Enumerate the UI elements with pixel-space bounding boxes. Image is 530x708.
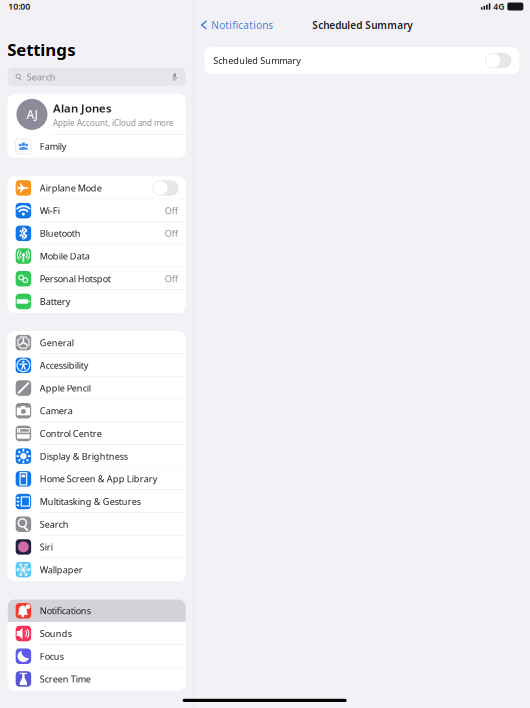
staticText: Mobile Data (40, 250, 90, 262)
button[interactable]: Search (8, 513, 186, 536)
staticText: Focus (40, 650, 64, 662)
staticText: Accessibility (40, 359, 89, 371)
staticText: Display & Brightness (40, 450, 128, 462)
staticText: Scheduled Summary (312, 18, 412, 32)
button[interactable]: Focus (8, 645, 186, 668)
staticText: 10:00 (8, 1, 30, 12)
button[interactable]: Camera (8, 399, 186, 422)
button[interactable]: Notifications (8, 599, 186, 622)
button[interactable]: Accessibility (8, 354, 186, 377)
staticText: Airplane Mode (40, 182, 102, 194)
staticText: Settings (7, 38, 75, 61)
staticText: General (40, 336, 74, 349)
staticText: AJ (26, 106, 37, 122)
staticText: Wi-Fi (40, 204, 60, 217)
button[interactable]: Bluetooth (8, 222, 186, 245)
button[interactable]: Display & Brightness (8, 445, 186, 467)
button[interactable]: Airplane Mode (8, 177, 186, 199)
button[interactable]: Scheduled Summary (204, 47, 519, 74)
button[interactable]: Siri (8, 536, 186, 558)
staticText: Search (40, 518, 69, 530)
button[interactable]: AJ (8, 94, 186, 135)
staticText: Siri (40, 541, 53, 553)
staticText: Off (165, 227, 178, 239)
staticText: Wallpaper (40, 563, 83, 576)
staticText: Search (27, 71, 56, 83)
button[interactable]: Apple Pencil (8, 377, 186, 399)
staticText: Off (165, 204, 178, 217)
button[interactable]: Mobile Data (8, 245, 186, 267)
button[interactable]: Screen Time (8, 668, 186, 690)
staticText: Camera (40, 405, 73, 417)
staticText: Apple Pencil (40, 382, 91, 394)
button[interactable]: Battery (8, 290, 186, 313)
staticText: Personal Hotspot (40, 273, 111, 285)
staticText: Home Screen & App Library (40, 473, 158, 485)
staticText: Notifications (40, 605, 91, 617)
staticText: Sounds (40, 627, 72, 640)
staticText: Family (40, 140, 67, 152)
button[interactable]: Wallpaper (8, 558, 186, 581)
staticText: Notifications (211, 18, 273, 32)
staticText: Apple Account, iCloud and more (53, 117, 174, 128)
button[interactable]: Sounds (8, 622, 186, 645)
button[interactable]: Wi-Fi (8, 199, 186, 222)
button[interactable]: General (8, 331, 186, 354)
staticText: Multitasking & Gestures (40, 495, 141, 508)
button[interactable]: Family (8, 135, 186, 158)
button[interactable]: Home Screen & App Library (8, 467, 186, 490)
staticText: 4G (493, 1, 504, 12)
button[interactable]: Personal Hotspot (8, 267, 186, 290)
button[interactable]: Multitasking & Gestures (8, 490, 186, 513)
staticText: Alan Jones (53, 100, 112, 116)
button[interactable]: Control Centre (8, 422, 186, 445)
staticText: Off (165, 273, 178, 285)
staticText: Scheduled Summary (213, 54, 301, 67)
staticText: Control Centre (40, 427, 102, 440)
staticText: Bluetooth (40, 227, 81, 239)
staticText: Battery (40, 295, 71, 308)
button[interactable]: Notifications (194, 18, 273, 32)
staticText: Screen Time (40, 673, 91, 685)
